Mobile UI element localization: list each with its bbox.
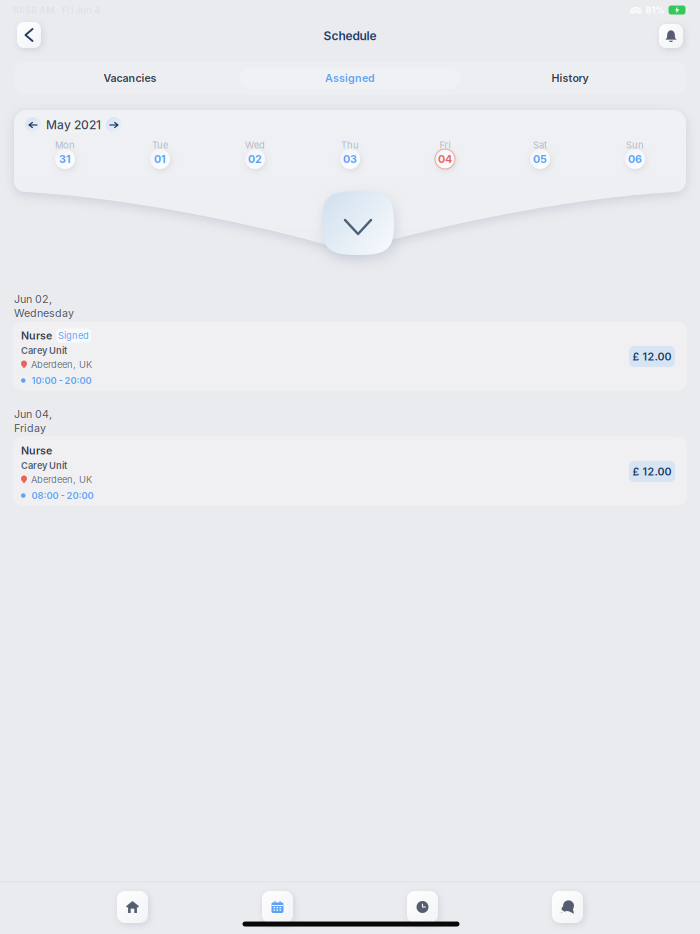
staticText: Carey Unit — [21, 460, 67, 471]
staticText: Schedule — [323, 29, 376, 43]
staticText: 03 — [343, 152, 357, 165]
button[interactable]: Wed — [235, 142, 275, 174]
staticText: Signed — [58, 330, 89, 341]
staticText: Jun 04, — [14, 407, 52, 420]
staticText: £ 12.00 — [632, 350, 671, 363]
button[interactable]: Sat — [520, 142, 560, 174]
staticText: Fri Jun 4 — [62, 4, 100, 16]
button[interactable]: Next month — [106, 117, 122, 133]
staticText: 05 — [533, 152, 547, 165]
button[interactable]: Back — [17, 22, 41, 48]
button[interactable]: Expand calendar — [322, 191, 394, 255]
staticText: Fri — [439, 139, 450, 151]
staticText: Aberdeen, UK — [31, 359, 92, 370]
staticText: Sun — [626, 139, 644, 151]
staticText: £ 12.00 — [632, 465, 671, 478]
button[interactable]: Sun — [615, 142, 655, 174]
button[interactable]: Mon — [45, 142, 85, 174]
staticText: 08:00 - 20:00 — [31, 490, 93, 501]
button[interactable]: Assigned — [240, 67, 460, 88]
staticText: Carey Unit — [21, 345, 67, 356]
staticText: 10:00 - 20:00 — [31, 375, 91, 386]
staticText: 81% — [645, 4, 664, 16]
staticText: 01 — [154, 152, 166, 165]
button[interactable]: Thu — [330, 142, 370, 174]
staticText: 31 — [59, 152, 71, 165]
staticText: Mon — [55, 139, 75, 151]
staticText: Friday — [14, 421, 46, 434]
button[interactable]: History — [407, 891, 438, 923]
staticText: Vacancies — [103, 71, 156, 84]
staticText: Tue — [152, 139, 168, 151]
staticText: Wed — [245, 139, 265, 151]
button[interactable]: Home — [117, 891, 148, 923]
staticText: Assigned — [325, 71, 375, 84]
staticText: Wednesday — [14, 306, 74, 319]
button[interactable]: Schedule — [262, 891, 293, 923]
button[interactable]: Previous month — [25, 117, 41, 133]
button[interactable]: Vacancies — [20, 67, 240, 88]
button[interactable]: Tue — [140, 142, 180, 174]
staticText: 10:58 AM — [12, 4, 55, 16]
staticText: Sat — [533, 139, 547, 151]
staticText: Aberdeen, UK — [31, 474, 92, 485]
button[interactable]: Messages — [552, 891, 583, 923]
staticText: History — [551, 71, 588, 84]
staticText: Thu — [341, 139, 359, 151]
staticText: 04 — [438, 152, 452, 165]
staticText: Jun 02, — [14, 292, 52, 305]
button[interactable]: Fri — [425, 142, 465, 174]
staticText: Nurse — [21, 329, 52, 342]
staticText: Nurse — [21, 444, 52, 457]
button[interactable]: Notifications — [659, 24, 683, 48]
button[interactable]: History — [460, 67, 680, 88]
staticText: 02 — [248, 152, 262, 165]
staticText: May 2021 — [46, 118, 101, 132]
staticText: 06 — [628, 152, 642, 165]
